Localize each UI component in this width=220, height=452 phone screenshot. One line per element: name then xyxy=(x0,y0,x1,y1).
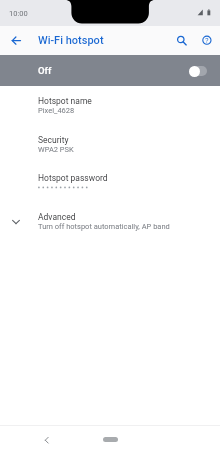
staticText: 10:00 xyxy=(9,9,28,18)
staticText: Wi-Fi hotspot xyxy=(38,34,104,47)
staticText: Advanced xyxy=(38,212,76,222)
staticText: Pixel_4628 xyxy=(38,106,75,115)
button[interactable]: Home xyxy=(103,437,118,442)
staticText: Hotspot name xyxy=(38,96,92,106)
staticText: WPA2 PSK xyxy=(38,145,74,154)
button[interactable]: Off xyxy=(0,55,220,86)
button[interactable]: Back xyxy=(5,29,27,51)
staticText: Security xyxy=(38,135,69,145)
button[interactable]: Hotspot password xyxy=(0,171,220,202)
button[interactable]: Security xyxy=(0,133,220,164)
staticText: Hotspot password xyxy=(38,173,108,183)
staticText: ? xyxy=(205,36,209,45)
staticText: Turn off hotspot automatically, AP band xyxy=(38,222,170,231)
button[interactable]: Back xyxy=(38,431,56,449)
button[interactable]: Help xyxy=(196,29,218,51)
button[interactable]: Hotspot name xyxy=(0,94,220,125)
button[interactable]: Search xyxy=(170,29,192,51)
button[interactable]: Advanced xyxy=(0,210,220,241)
staticText: Off xyxy=(38,65,52,76)
